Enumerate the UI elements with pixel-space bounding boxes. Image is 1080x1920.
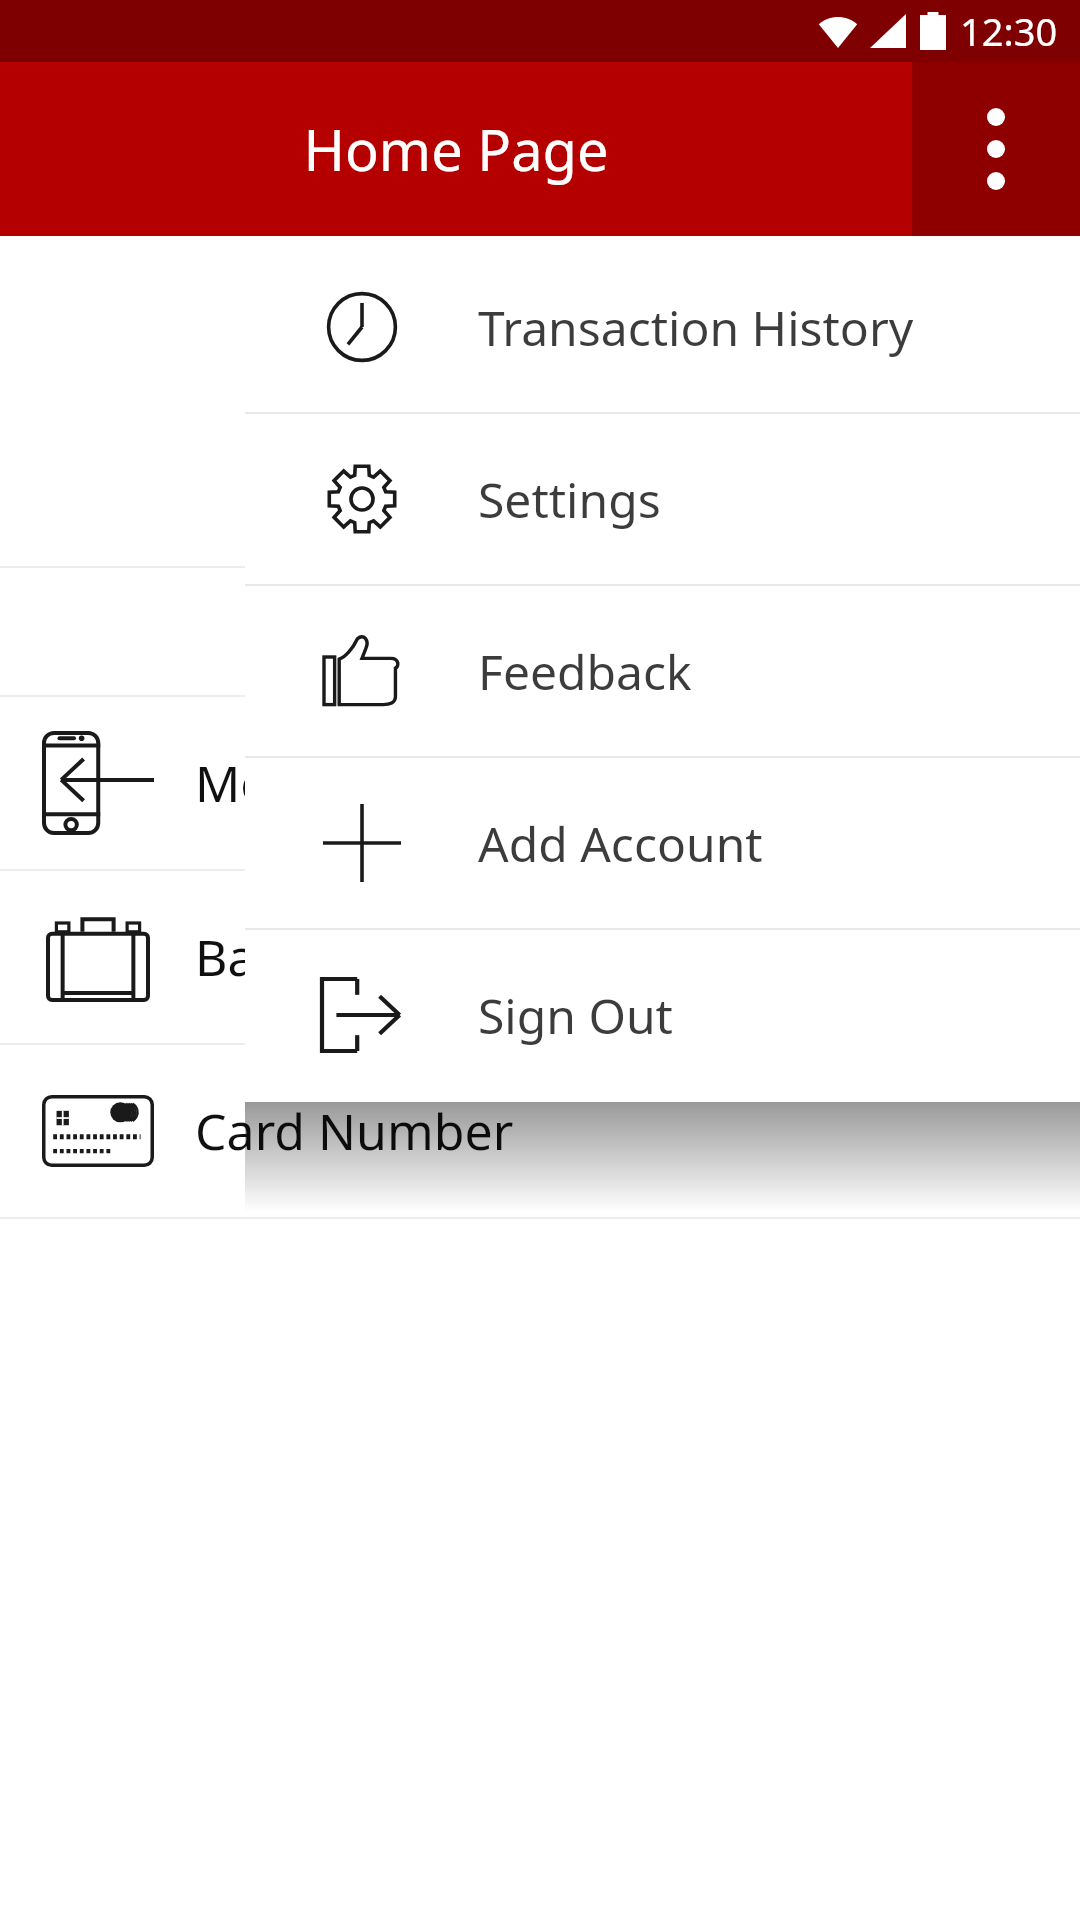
staticText: Mobile Recharge (195, 749, 590, 817)
button[interactable]: More options (912, 62, 1080, 236)
button[interactable]: Add Account (245, 758, 1080, 928)
button[interactable]: Settings (245, 414, 1080, 584)
staticText: Home Page (0, 111, 912, 187)
button[interactable]: Bank Account (0, 871, 1080, 1043)
button[interactable]: Card Number (0, 1045, 1080, 1217)
button[interactable]: Transaction History (245, 242, 1080, 412)
staticText: Add Account (478, 811, 763, 876)
button[interactable]: Mobile Recharge (0, 697, 1080, 869)
button[interactable]: Sign Out (245, 930, 1080, 1100)
staticText: Feedback (478, 639, 692, 704)
staticText: Bank Account (195, 923, 517, 991)
staticText: Sign Out (478, 983, 673, 1048)
staticText: 12:30 (960, 5, 1058, 57)
button[interactable]: Feedback (245, 586, 1080, 756)
staticText: Settings (478, 467, 661, 532)
staticText: Card Number (195, 1097, 514, 1165)
staticText: Transaction History (478, 295, 914, 360)
